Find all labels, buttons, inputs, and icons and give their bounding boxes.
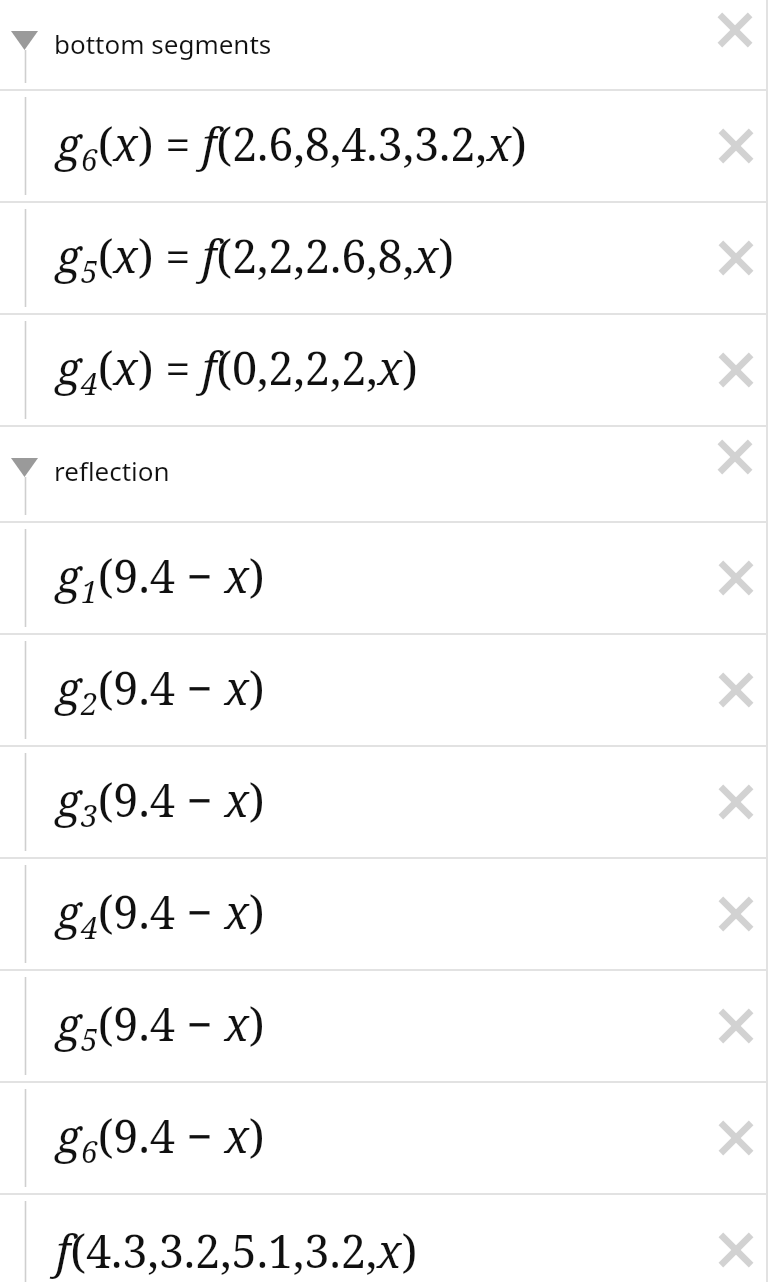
staticText: g4(9.4 − x) xyxy=(56,881,265,948)
button[interactable]: f(4.3,3.2,5.1,3.2,x) xyxy=(0,1195,768,1282)
staticText: g5(9.4 − x) xyxy=(56,993,265,1060)
button[interactable]: g3(9.4 − x) xyxy=(0,747,768,857)
staticText: bottom segments xyxy=(54,26,272,61)
button[interactable]: Delete expression xyxy=(704,1106,768,1170)
button[interactable]: Delete expression xyxy=(704,226,768,290)
button[interactable]: bottom segments xyxy=(0,0,768,89)
button[interactable]: g4(x) = f(0,2,2,2,x) xyxy=(0,315,768,425)
staticText: g2(9.4 − x) xyxy=(56,657,265,724)
staticText: f(4.3,3.2,5.1,3.2,x) xyxy=(56,1220,418,1281)
button[interactable]: Delete expression xyxy=(704,770,768,834)
button[interactable]: g6(x) = f(2.6,8,4.3,3.2,x) xyxy=(0,91,768,201)
button[interactable]: g1(9.4 − x) xyxy=(0,523,768,633)
button[interactable]: Delete expression xyxy=(704,882,768,946)
button[interactable]: Delete expression xyxy=(704,1218,768,1282)
staticText: g4(x) = f(0,2,2,2,x) xyxy=(56,337,418,404)
staticText: reflection xyxy=(54,453,170,488)
button[interactable]: Delete expression xyxy=(704,994,768,1058)
button[interactable]: Delete expression xyxy=(703,0,767,62)
button[interactable]: g6(9.4 − x) xyxy=(0,1083,768,1193)
button[interactable]: Delete expression xyxy=(704,546,768,610)
staticText: g5(x) = f(2,2,2.6,8,x) xyxy=(56,225,455,292)
staticText: g6(9.4 − x) xyxy=(56,1105,265,1172)
button[interactable]: reflection xyxy=(0,427,768,521)
button[interactable]: Delete expression xyxy=(703,425,767,489)
button[interactable]: g4(9.4 − x) xyxy=(0,859,768,969)
button[interactable]: g5(9.4 − x) xyxy=(0,971,768,1081)
button[interactable]: Delete expression xyxy=(704,338,768,402)
staticText: g3(9.4 − x) xyxy=(56,769,265,836)
staticText: g1(9.4 − x) xyxy=(56,545,265,612)
staticText: g6(x) = f(2.6,8,4.3,3.2,x) xyxy=(56,113,527,180)
button[interactable]: Delete expression xyxy=(704,658,768,722)
button[interactable]: Delete expression xyxy=(704,114,768,178)
button[interactable]: g2(9.4 − x) xyxy=(0,635,768,745)
button[interactable]: g5(x) = f(2,2,2.6,8,x) xyxy=(0,203,768,313)
